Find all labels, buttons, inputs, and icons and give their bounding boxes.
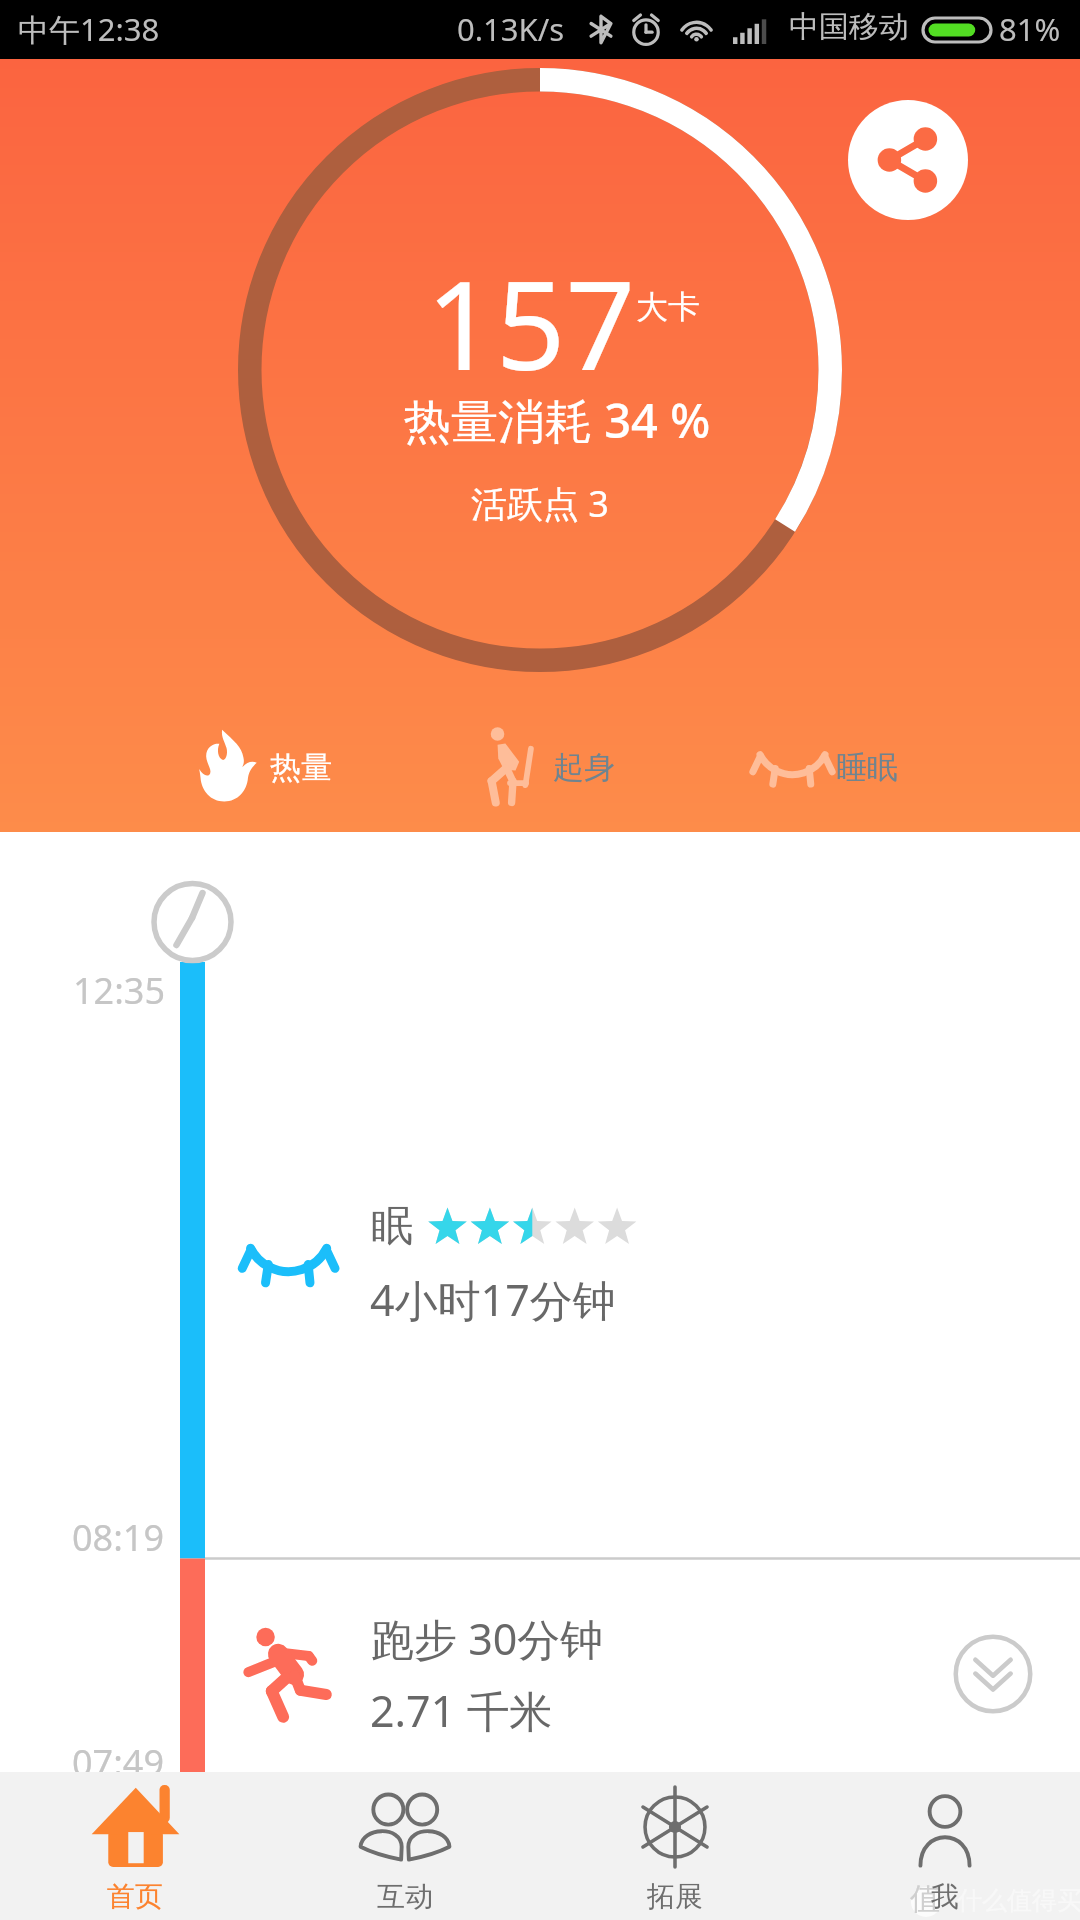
staticText: 4小时17分钟 <box>370 1270 616 1329</box>
button[interactable]: 拓展 <box>540 1772 810 1920</box>
staticText: 热量消耗 34 % <box>404 388 711 452</box>
staticText: 中午12:38 <box>18 8 160 50</box>
staticText: 0.13K/s <box>457 8 565 50</box>
button[interactable]: 热量 <box>179 712 348 818</box>
button[interactable]: Share <box>848 100 968 220</box>
staticText: 81% <box>999 8 1061 50</box>
staticText: 中国移动 <box>789 8 909 46</box>
staticText: 眠 <box>371 1200 413 1253</box>
button[interactable]: 睡眠 <box>735 712 914 818</box>
staticText: 值 <box>910 1880 940 1918</box>
staticText: 大卡 <box>636 287 700 327</box>
staticText: 我 <box>931 1879 959 1914</box>
staticText: 睡眠 <box>836 748 898 787</box>
staticText: 什么值得买 <box>957 1885 1080 1916</box>
button[interactable]: 首页 <box>0 1772 270 1920</box>
staticText: 互动 <box>377 1879 433 1914</box>
staticText: 热量 <box>270 748 332 787</box>
staticText: 157 <box>426 240 636 406</box>
staticText: 2.71 千米 <box>370 1681 553 1740</box>
staticText: 拓展 <box>647 1879 703 1914</box>
staticText: 08:19 <box>72 1513 165 1562</box>
staticText: 07:49 <box>72 1738 165 1787</box>
staticText: 首页 <box>107 1879 163 1914</box>
button[interactable]: Expand <box>951 1632 1035 1716</box>
staticText: 12:35 <box>73 966 166 1015</box>
staticText: 跑步 30分钟 <box>371 1609 604 1668</box>
staticText: 起身 <box>553 748 615 787</box>
button[interactable]: 互动 <box>270 1772 540 1920</box>
button[interactable]: 眠 <box>205 1180 1080 1340</box>
staticText: 活跃点 3 <box>471 479 609 528</box>
button[interactable]: 我 <box>810 1772 1080 1920</box>
button[interactable]: 跑步 30分钟 <box>205 1575 1080 1765</box>
button[interactable]: 起身 <box>471 712 631 818</box>
